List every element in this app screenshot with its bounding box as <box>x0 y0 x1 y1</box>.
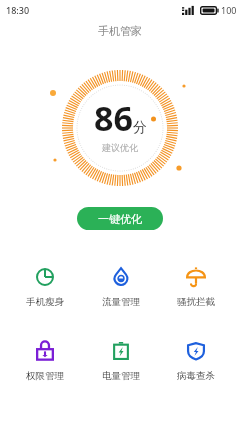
staticText: 分 <box>133 119 147 137</box>
staticText: 建议优化 <box>102 142 138 153</box>
other: 手机瘦身 <box>36 268 54 286</box>
button[interactable]: 权限管理 <box>7 341 83 382</box>
staticText: 病毒查杀 <box>177 370 215 382</box>
other: 权限管理 <box>36 342 54 360</box>
button[interactable]: 病毒查杀 <box>158 341 233 382</box>
staticText: 手机瘦身 <box>26 296 64 308</box>
staticText: 手机管家 <box>98 24 142 38</box>
staticText: 骚扰拦截 <box>177 296 215 308</box>
other: 病毒查杀 <box>187 342 205 360</box>
button[interactable]: 骚扰拦截 <box>158 267 233 308</box>
staticText: 流量管理 <box>102 296 140 308</box>
button[interactable]: 一键优化 <box>77 207 163 230</box>
other: 电量管理 <box>112 342 130 360</box>
staticText: 一键优化 <box>98 212 142 226</box>
staticText: 18:30 <box>6 4 30 16</box>
staticText: 86 <box>94 95 133 141</box>
staticText: 权限管理 <box>26 370 64 382</box>
staticText: 100 <box>221 4 237 16</box>
staticText: 电量管理 <box>102 370 140 382</box>
other: 流量管理 <box>112 268 130 286</box>
other: 骚扰拦截 <box>186 267 206 287</box>
button[interactable]: 手机瘦身 <box>7 267 83 308</box>
button[interactable]: 流量管理 <box>83 267 158 308</box>
button[interactable]: 电量管理 <box>83 341 158 382</box>
